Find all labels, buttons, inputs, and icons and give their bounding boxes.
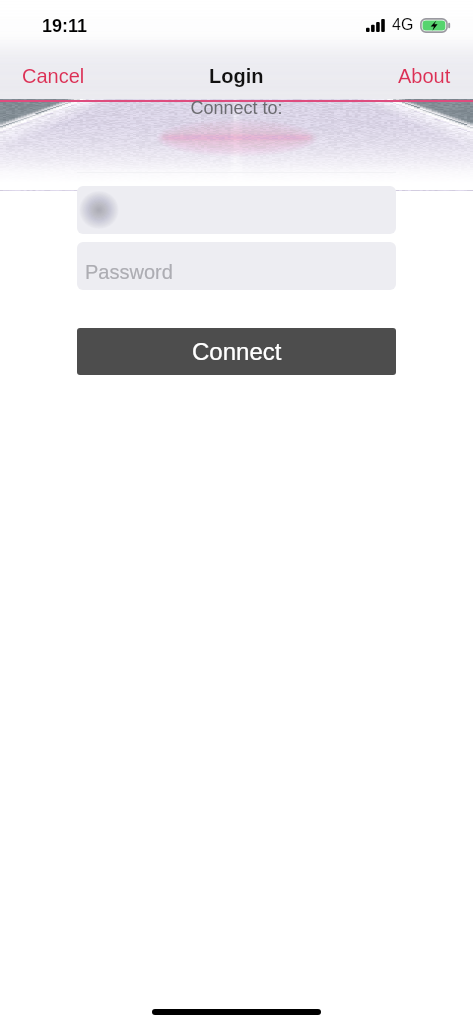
staticText: Connect: [192, 338, 282, 365]
staticText: Cancel: [22, 65, 85, 87]
button[interactable]: About: [384, 59, 465, 93]
staticText: About: [398, 65, 451, 87]
staticText: 19:11: [42, 16, 88, 36]
button[interactable]: Connect: [77, 328, 396, 375]
staticText: 4G: [392, 16, 414, 34]
button[interactable]: Username: [77, 186, 396, 234]
button[interactable]: Cancel: [8, 59, 99, 93]
staticText: Login: [209, 65, 264, 87]
staticText: Password: [85, 261, 173, 283]
staticText: Connect to:: [0, 98, 473, 118]
button[interactable]: Password: [77, 242, 396, 290]
